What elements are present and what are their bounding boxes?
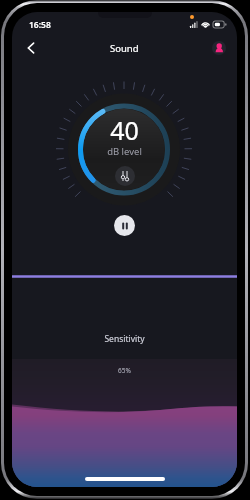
staticText: Sensitivity <box>12 333 237 345</box>
button[interactable]: Profile <box>212 41 226 55</box>
button[interactable]: Back <box>19 36 43 60</box>
button[interactable]: Pause <box>114 215 135 236</box>
staticText: Sound <box>110 42 139 55</box>
staticText: dB level <box>12 145 237 158</box>
staticText: 65% <box>12 366 237 375</box>
staticText: 16:58 <box>29 19 51 31</box>
button[interactable]: Adjust settings <box>115 166 135 186</box>
staticText: 40 <box>12 113 237 147</box>
